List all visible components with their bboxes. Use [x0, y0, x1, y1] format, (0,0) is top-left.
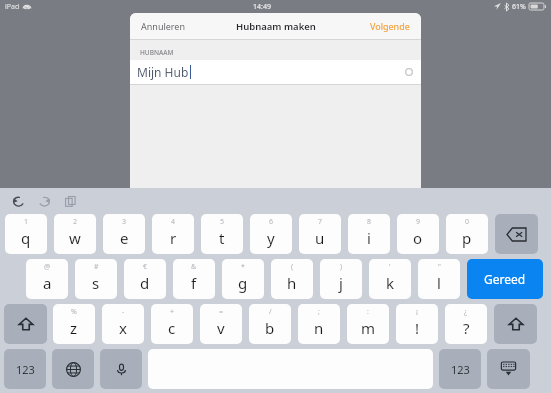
button[interactable]: *	[222, 259, 264, 299]
button[interactable]: ¡	[396, 304, 438, 344]
staticText: e	[120, 228, 129, 248]
staticText: 7	[318, 217, 323, 227]
staticText: r	[170, 228, 177, 248]
staticText: ;	[318, 307, 320, 317]
staticText: ?	[463, 318, 470, 338]
button[interactable]: Mijn Hub	[130, 60, 421, 84]
button[interactable]: Hide keyboard	[487, 349, 530, 389]
staticText: iPad	[5, 2, 20, 12]
button[interactable]: 1	[5, 214, 47, 254]
staticText: b	[265, 318, 275, 338]
button[interactable]: 123	[4, 349, 46, 389]
button[interactable]: '	[369, 259, 411, 299]
staticText: 6	[269, 217, 274, 227]
staticText: y	[267, 228, 275, 248]
staticText: n	[314, 318, 324, 338]
staticText: (	[291, 262, 294, 272]
button[interactable]: €	[124, 259, 166, 299]
staticText: g	[238, 273, 248, 293]
staticText: /	[269, 307, 272, 317]
staticText: 61%	[512, 2, 526, 12]
button[interactable]: Shift	[494, 304, 537, 344]
button[interactable]: Annuleren	[138, 17, 189, 35]
staticText: d	[140, 273, 150, 293]
staticText: p	[462, 228, 472, 248]
staticText: 3	[122, 217, 127, 227]
staticText: w	[69, 228, 81, 248]
staticText: q	[21, 228, 31, 248]
button[interactable]: #	[75, 259, 117, 299]
staticText: #	[94, 262, 99, 272]
staticText: 4	[171, 217, 176, 227]
staticText: %	[71, 307, 77, 317]
button[interactable]: Volgende	[367, 17, 413, 35]
button[interactable]: +	[151, 304, 193, 344]
button[interactable]: 3	[103, 214, 145, 254]
button[interactable]: &	[173, 259, 215, 299]
staticText: k	[386, 273, 395, 293]
staticText: i	[367, 228, 371, 248]
staticText: )	[340, 262, 343, 272]
button[interactable]: Redo	[34, 191, 54, 211]
staticText: m	[361, 318, 376, 338]
button[interactable]: (	[271, 259, 313, 299]
staticText: o	[413, 228, 423, 248]
staticText: f	[191, 273, 197, 293]
staticText: &	[191, 262, 197, 272]
staticText: 5	[220, 217, 225, 227]
staticText: *	[241, 262, 245, 272]
staticText: HUBNAAM	[140, 48, 174, 57]
staticText: :	[367, 307, 369, 317]
button[interactable]: /	[249, 304, 291, 344]
staticText: x	[119, 318, 127, 338]
button[interactable]: 4	[152, 214, 194, 254]
staticText: Hubnaam maken	[236, 20, 316, 33]
staticText: v	[217, 318, 225, 338]
staticText: -	[122, 307, 125, 317]
button[interactable]: Gereed	[467, 259, 543, 299]
staticText: 123	[451, 362, 470, 377]
staticText: j	[339, 273, 343, 293]
staticText: ¿	[464, 307, 468, 317]
button[interactable]: 0	[446, 214, 488, 254]
staticText: 2	[73, 217, 78, 227]
button[interactable]: Dictation	[100, 349, 142, 389]
staticText: h	[287, 273, 297, 293]
button[interactable]: =	[200, 304, 242, 344]
button[interactable]: Backspace	[495, 214, 538, 254]
button[interactable]: "	[418, 259, 460, 299]
button[interactable]: 9	[397, 214, 439, 254]
button[interactable]: %	[53, 304, 95, 344]
button[interactable]: )	[320, 259, 362, 299]
button[interactable]: ;	[298, 304, 340, 344]
staticText: !	[415, 318, 420, 338]
staticText: Volgende	[370, 20, 410, 32]
button[interactable]: 123	[439, 349, 481, 389]
button[interactable]: Shift	[4, 304, 47, 344]
staticText: 0	[465, 217, 470, 227]
button[interactable]: Undo	[8, 191, 28, 211]
button[interactable]: @	[26, 259, 68, 299]
staticText: 9	[416, 217, 421, 227]
button[interactable]: Clear text	[405, 68, 413, 76]
button[interactable]: Change keyboard	[52, 349, 94, 389]
button[interactable]: ¿	[445, 304, 487, 344]
staticText: '	[389, 262, 391, 272]
button[interactable]: 5	[201, 214, 243, 254]
staticText: t	[219, 228, 225, 248]
staticText: 1	[24, 217, 29, 227]
button[interactable]: 8	[348, 214, 390, 254]
button[interactable]: Copy	[60, 191, 80, 211]
staticText: +	[170, 307, 175, 317]
button[interactable]: -	[102, 304, 144, 344]
staticText: =	[219, 307, 224, 317]
staticText: 123	[16, 362, 35, 377]
button[interactable]: :	[347, 304, 389, 344]
staticText: z	[70, 318, 78, 338]
button[interactable]: 2	[54, 214, 96, 254]
staticText: €	[143, 262, 148, 272]
staticText: "	[438, 262, 441, 272]
button[interactable]: 7	[299, 214, 341, 254]
button[interactable]: 6	[250, 214, 292, 254]
